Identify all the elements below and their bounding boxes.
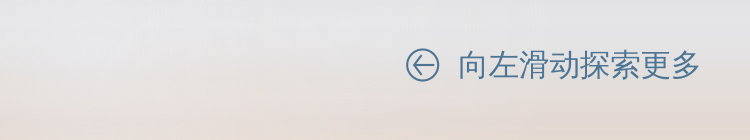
button[interactable]: 向左滑动探索更多 [401, 36, 708, 94]
staticText: 向左滑动探索更多 [458, 46, 702, 84]
